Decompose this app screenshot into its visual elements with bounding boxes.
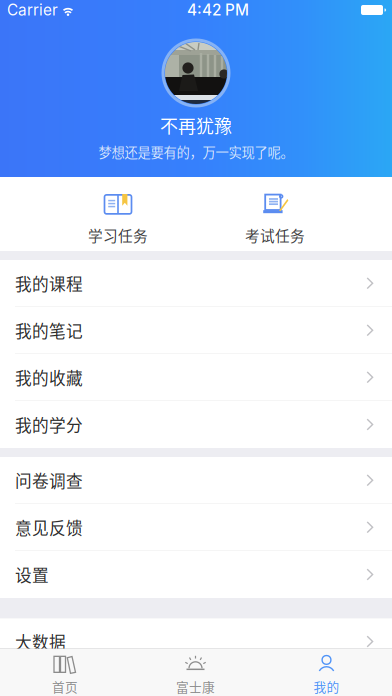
staticText: Carrier bbox=[7, 1, 58, 19]
staticText: 我的 bbox=[313, 677, 339, 696]
staticText: 不再犹豫 bbox=[160, 112, 232, 138]
button[interactable]: 问卷调查 bbox=[0, 457, 392, 504]
button[interactable]: 学习任务 bbox=[0, 182, 236, 246]
staticText: 意见反馈 bbox=[15, 515, 83, 539]
button[interactable]: 我的 bbox=[261, 649, 392, 696]
button[interactable]: 我的收藏 bbox=[0, 354, 392, 401]
button[interactable]: 富士康 bbox=[130, 649, 261, 696]
button[interactable]: 我的笔记 bbox=[0, 307, 392, 354]
staticText: 问卷调查 bbox=[15, 468, 83, 492]
button[interactable]: 我的课程 bbox=[0, 260, 392, 307]
button[interactable]: 我的学分 bbox=[0, 401, 392, 448]
staticText: 学习任务 bbox=[88, 224, 148, 246]
button[interactable]: 设置 bbox=[0, 551, 392, 598]
button[interactable]: 意见反馈 bbox=[0, 504, 392, 551]
staticText: 考试任务 bbox=[245, 224, 305, 246]
staticText: 我的课程 bbox=[15, 271, 83, 295]
staticText: 设置 bbox=[15, 562, 49, 586]
staticText: 梦想还是要有的，万一实现了呢。 bbox=[98, 142, 293, 161]
button[interactable]: 首页 bbox=[0, 649, 130, 696]
staticText: 首页 bbox=[52, 677, 78, 696]
staticText: 我的学分 bbox=[15, 412, 83, 436]
staticText: 我的收藏 bbox=[15, 365, 83, 389]
staticText: 富士康 bbox=[176, 677, 215, 696]
staticText: 4:42 PM bbox=[187, 1, 249, 19]
staticText: 大数据 bbox=[15, 629, 66, 653]
button[interactable]: 考试任务 bbox=[236, 182, 314, 246]
staticText: 我的笔记 bbox=[15, 318, 83, 342]
